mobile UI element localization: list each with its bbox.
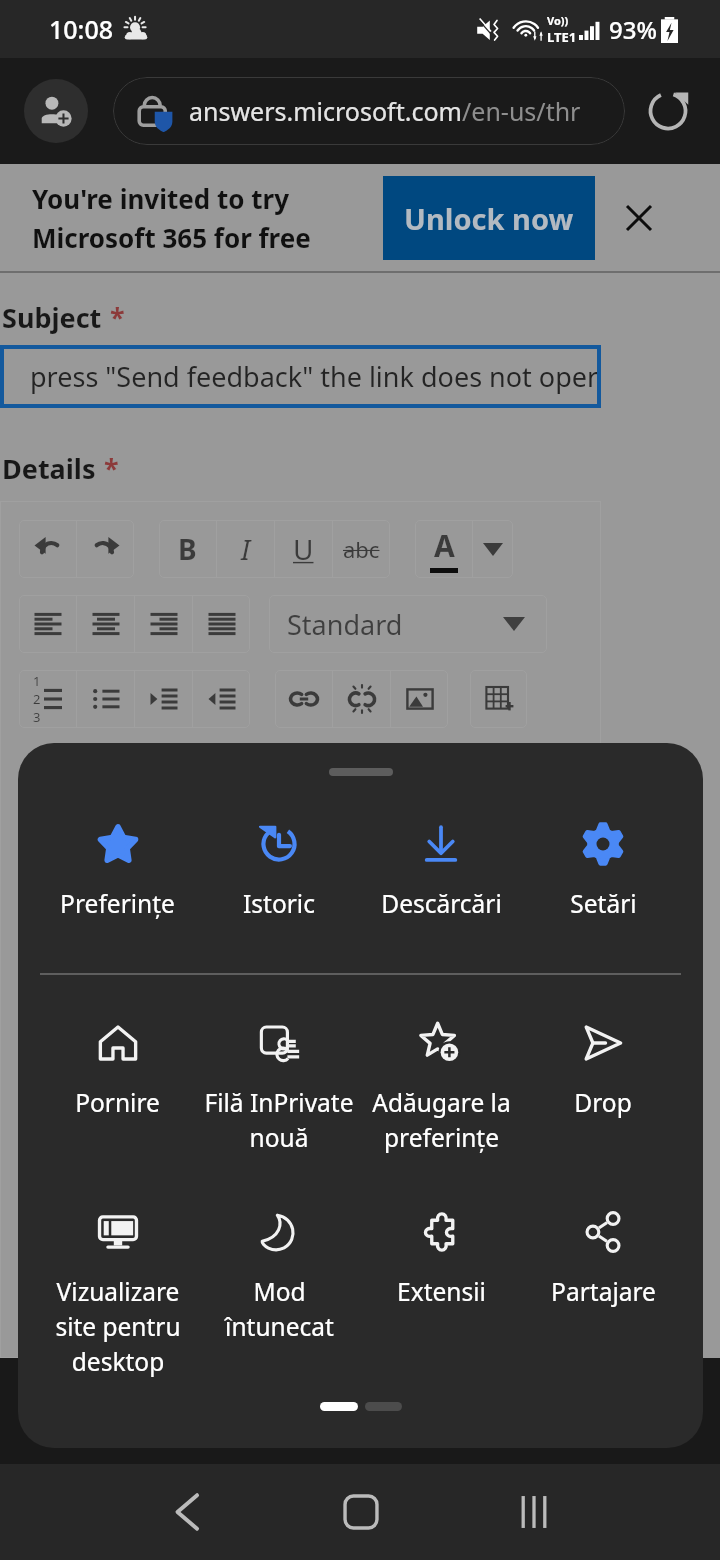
staticText: 10:08 [49,12,114,46]
button[interactable]: B [159,520,216,578]
staticText: Filă InPrivate nouă [204,1086,354,1155]
staticText: Standard [287,606,403,643]
staticText: Drop [574,1086,632,1119]
button[interactable] [473,520,513,578]
button[interactable]: Descărcări [360,807,522,937]
button[interactable]: Pornire [37,1006,198,1136]
button[interactable] [275,670,332,728]
button[interactable] [193,670,250,728]
button[interactable] [77,670,134,728]
staticText: Vo)) [547,13,569,28]
staticText: /en-us/thr [462,94,581,128]
staticText: 3 [33,708,41,726]
staticText: U [293,530,314,568]
staticText: Subject [2,299,102,336]
staticText: Partajare [551,1275,656,1308]
button[interactable]: Unlock now [383,176,595,260]
button[interactable]: Reload [634,77,702,145]
button[interactable] [193,595,250,653]
button[interactable] [135,595,192,653]
button[interactable]: Extensii [360,1195,522,1325]
staticText: Setări [570,887,637,920]
button[interactable] [77,595,134,653]
staticText: I [241,530,251,568]
button[interactable]: Drop [522,1006,684,1136]
staticText: Mod întunecat [225,1275,334,1344]
button[interactable] [470,670,527,728]
staticText: Descărcări [381,887,502,920]
staticText: Extensii [397,1275,486,1308]
button[interactable]: U [275,520,332,578]
button[interactable]: Preferințe [37,807,198,937]
button[interactable] [19,520,76,578]
button[interactable]: Setări [522,807,684,937]
button[interactable]: Close [615,194,663,242]
staticText: Unlock now [404,199,574,238]
button[interactable]: Istoric [198,807,360,937]
staticText: Preferințe [60,887,175,920]
staticText: You're invited to try [32,181,289,216]
button[interactable] [77,520,134,578]
button[interactable]: Recent apps [447,1464,620,1560]
button[interactable]: Mod întunecat [198,1195,360,1325]
button[interactable]: Standard [269,595,547,653]
button[interactable] [19,595,76,653]
button[interactable]: Partajare [522,1195,684,1325]
button[interactable]: Profile [24,79,88,143]
button[interactable] [333,670,390,728]
staticText: * [104,450,119,487]
button[interactable]: 1 [19,670,76,728]
button[interactable]: abc [333,520,390,578]
staticText: LTE1 [547,28,577,46]
staticText: press "Send feedback" the link does not … [30,358,599,395]
staticText: answers.microsoft.com [189,94,462,128]
staticText: Vizualizare site pentru desktop [55,1275,181,1379]
staticText: abc [343,534,380,564]
button[interactable]: Vizualizare site pentru desktop [37,1195,198,1325]
staticText: Microsoft 365 for free [32,220,311,255]
staticText: 1 [33,672,41,690]
button[interactable]: A [415,520,472,578]
button[interactable] [391,670,448,728]
button[interactable]: I [217,520,274,578]
staticText: 2 [33,690,41,708]
staticText: Pornire [75,1086,160,1119]
button[interactable]: Back [100,1464,274,1560]
button[interactable]: answers.microsoft.com [113,77,625,145]
button[interactable]: Filă InPrivate nouă [198,1006,360,1136]
button[interactable] [135,670,192,728]
staticText: Istoric [243,887,315,920]
staticText: B [178,530,197,568]
staticText: A [434,525,455,566]
button[interactable]: Home [274,1464,447,1560]
staticText: 93% [609,13,657,46]
staticText: * [110,299,125,336]
staticText: Details [2,450,96,487]
button[interactable]: Adăugare la preferințe [360,1006,522,1136]
staticText: Adăugare la preferințe [372,1086,511,1155]
